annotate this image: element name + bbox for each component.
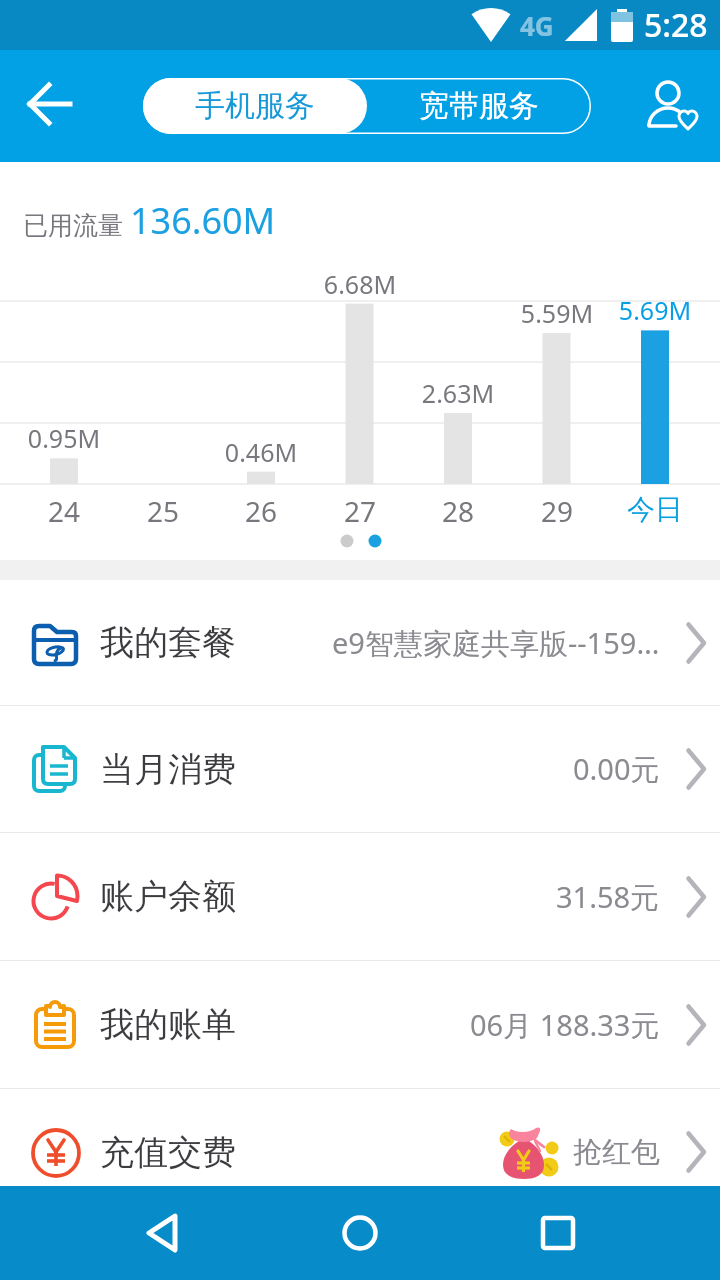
button[interactable] [508,1186,608,1280]
staticText: 我的套餐 [100,621,236,664]
staticText: 账户余额 [100,875,236,918]
button[interactable] [112,1186,212,1280]
button[interactable]: 我的套餐 [0,580,720,705]
button[interactable] [22,78,78,134]
button[interactable]: 当月消费 [0,706,720,832]
staticText: 31.58元 [556,877,660,917]
staticText: 24 [4,492,124,530]
staticText: 宽带服务 [419,87,539,125]
button[interactable]: 账户余额 [0,833,720,960]
staticText: 当月消费 [100,748,236,791]
button[interactable] [644,78,700,134]
button[interactable]: 我的账单 [0,961,720,1088]
staticText: e9智慧家庭共享版--159… [332,623,660,663]
staticText: 0.95M [4,421,124,455]
staticText: 已用流量 [23,210,123,241]
button[interactable] [310,1186,410,1280]
button[interactable]: 充值交费 [0,1089,720,1186]
staticText: 充值交费 [100,1131,236,1174]
staticText: 5.59M [497,296,617,330]
staticText: 抢红包 [573,1134,660,1171]
staticText: 6.68M [300,267,420,301]
staticText: 25 [103,492,223,530]
staticText: 0.00元 [573,749,660,789]
button[interactable]: 手机服务 [143,78,367,134]
staticText: 手机服务 [195,87,315,125]
staticText: 4G [520,8,554,43]
staticText: 我的账单 [100,1003,236,1046]
staticText: 136.60M [130,196,276,245]
staticText: 26 [201,492,321,530]
staticText: 27 [300,492,420,530]
staticText: 今日 [595,492,715,527]
staticText: 2.63M [398,376,518,410]
button[interactable]: 宽带服务 [367,78,591,134]
staticText: 0.46M [201,435,321,469]
staticText: 28 [398,492,518,530]
staticText: 5:28 [644,3,708,47]
staticText: 06月 188.33元 [470,1005,660,1045]
staticText: 29 [497,492,617,530]
staticText: 5.69M [595,293,715,327]
